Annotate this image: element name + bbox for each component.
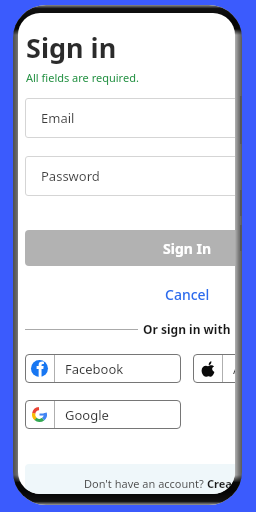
- staticText: Or sign in with: [143, 321, 231, 337]
- staticText: Google: [65, 406, 109, 424]
- button[interactable]: Cancel: [159, 283, 216, 306]
- staticText: Facebook: [65, 360, 124, 378]
- staticText: All fields are required.: [26, 70, 139, 85]
- staticText: Create account: [207, 476, 235, 491]
- staticText: Don't have an account?: [84, 476, 207, 491]
- button[interactable]: Password: [25, 156, 235, 196]
- staticText: Apple: [233, 360, 235, 378]
- staticText: Password: [41, 167, 100, 185]
- staticText: Sign in: [26, 29, 117, 66]
- staticText: Email: [41, 109, 75, 127]
- staticText: Cancel: [165, 285, 210, 304]
- button[interactable]: Sign In: [25, 230, 235, 266]
- button[interactable]: Facebook: [25, 354, 181, 383]
- staticText: Sign In: [163, 239, 212, 258]
- button[interactable]: Email: [25, 98, 235, 138]
- button[interactable]: Don't have an account?: [25, 464, 235, 494]
- button[interactable]: Google: [25, 400, 181, 429]
- button[interactable]: Apple: [193, 354, 235, 383]
